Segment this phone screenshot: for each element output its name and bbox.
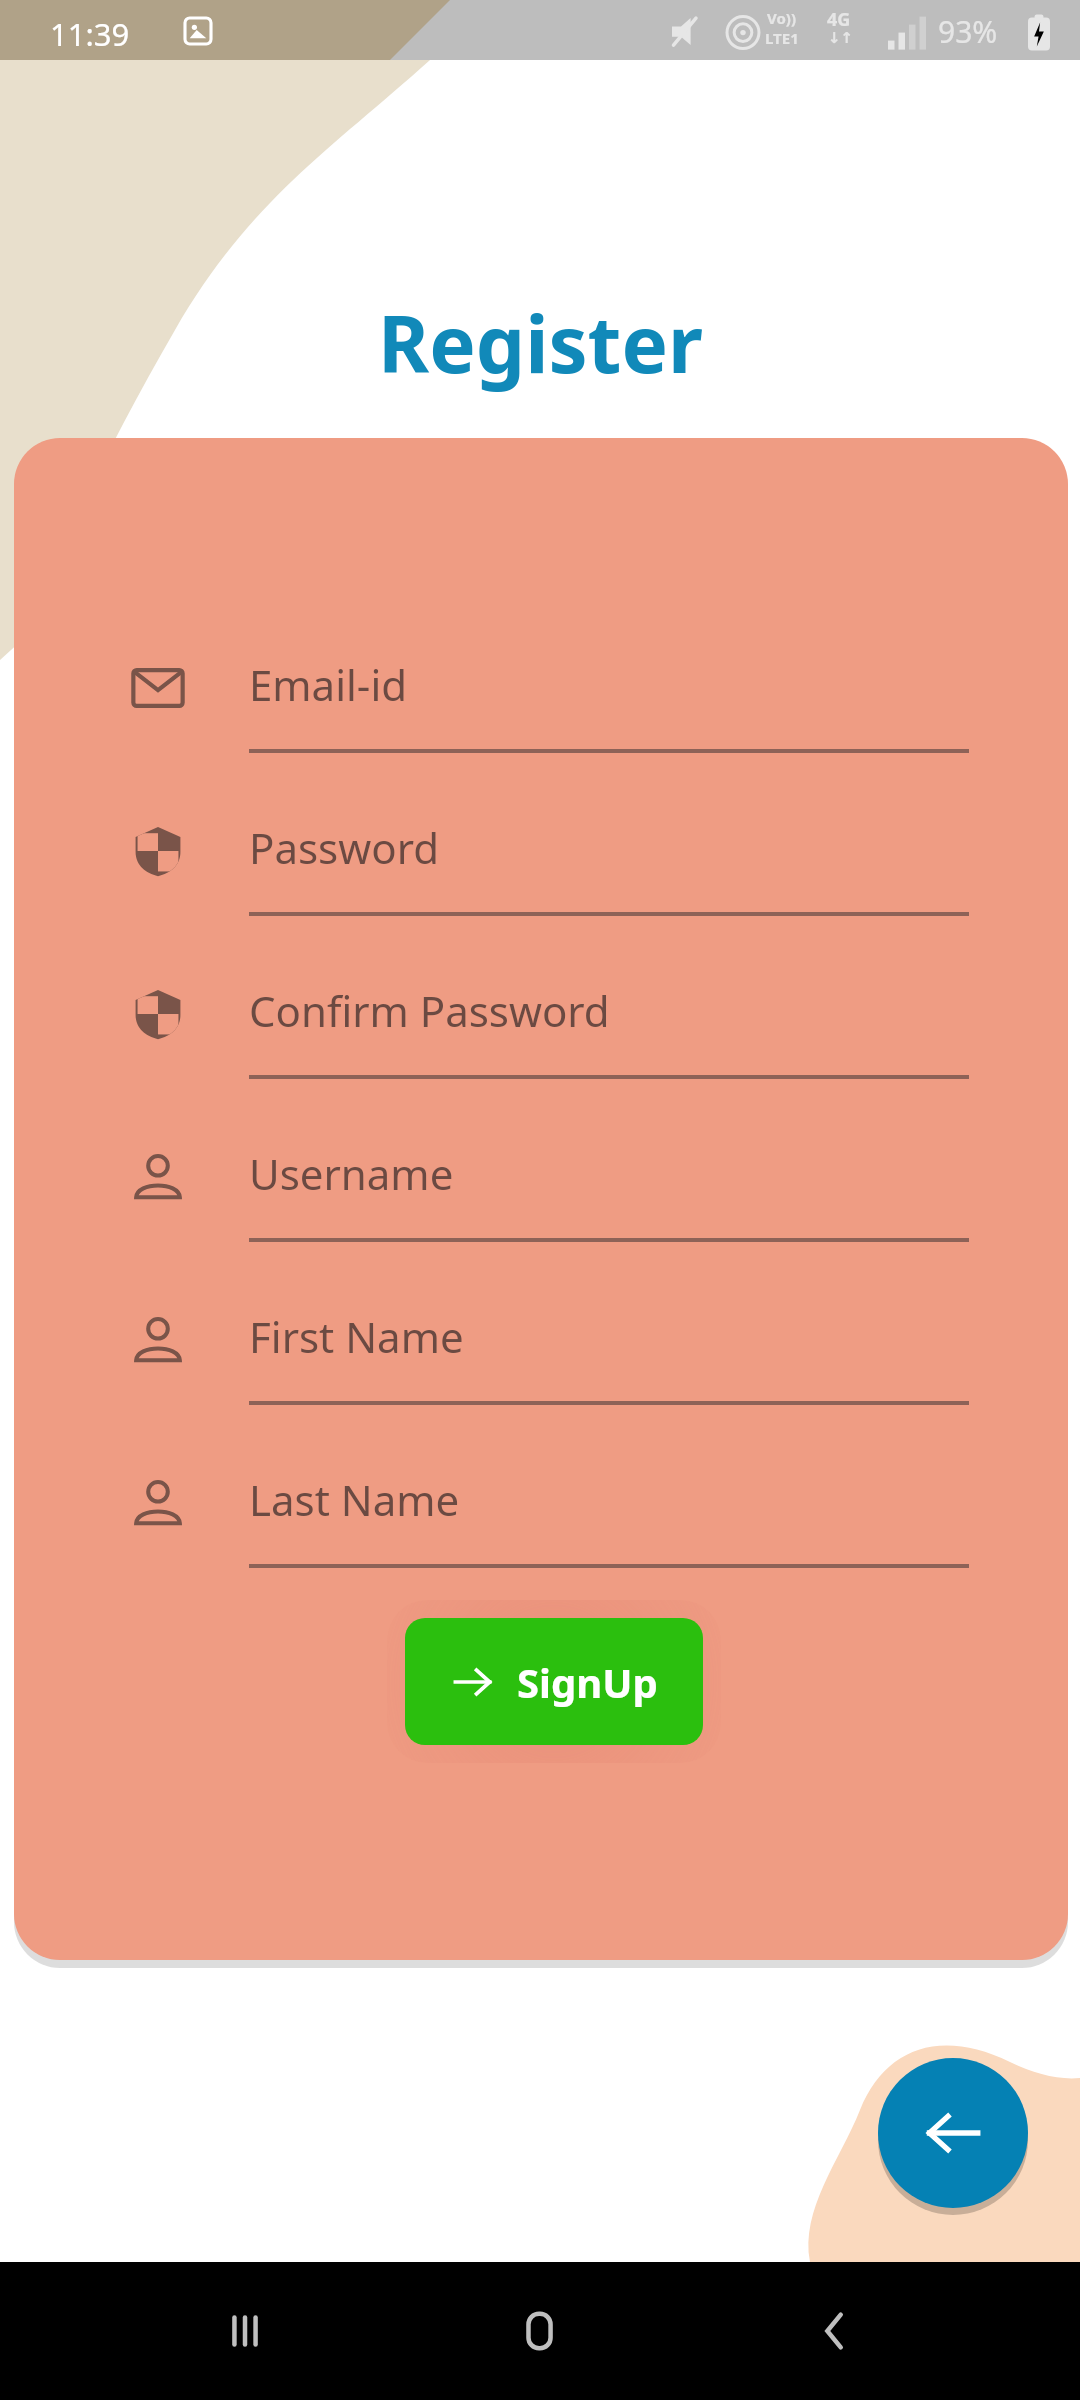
staticText: SignUp — [517, 1655, 658, 1709]
button[interactable]: Username — [114, 1131, 968, 1261]
staticText: 4G — [827, 7, 851, 32]
staticText: Vo)) — [767, 8, 796, 28]
staticText: Confirm Password — [249, 982, 610, 1039]
staticText: 11:39 — [50, 13, 130, 55]
button[interactable]: SignUp — [405, 1618, 703, 1745]
button[interactable]: Password — [114, 805, 968, 935]
staticText: Last Name — [249, 1471, 460, 1528]
button[interactable]: Recent apps — [195, 2281, 295, 2381]
staticText: Username — [249, 1145, 454, 1202]
staticText: ↓↑ — [828, 29, 854, 46]
staticText: Password — [249, 819, 439, 876]
button[interactable]: First Name — [114, 1294, 968, 1424]
button[interactable]: Email-id — [114, 642, 968, 772]
button[interactable]: Back — [785, 2281, 885, 2381]
button[interactable]: Home — [490, 2281, 590, 2381]
staticText: First Name — [249, 1308, 464, 1365]
button[interactable]: Confirm Password — [114, 968, 968, 1098]
staticText: Register — [378, 290, 703, 396]
staticText: LTE1 — [765, 28, 799, 48]
button[interactable]: Last Name — [114, 1457, 968, 1587]
button[interactable]: Back — [878, 2058, 1028, 2208]
staticText: Email-id — [249, 656, 408, 713]
staticText: 93% — [938, 11, 998, 52]
